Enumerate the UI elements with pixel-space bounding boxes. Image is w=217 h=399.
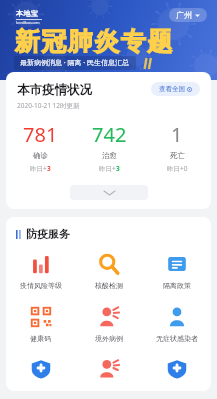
button[interactable]: 隔离政策	[143, 251, 211, 292]
staticText: 3	[116, 164, 120, 173]
staticText: 隔离政策	[163, 281, 191, 290]
staticText: 无症状感染者	[156, 334, 198, 343]
staticText: 本地宝	[16, 9, 39, 18]
button[interactable]: 健康码	[6, 304, 75, 345]
button[interactable]: 查看全国	[151, 82, 200, 96]
button[interactable]: 核酸检测	[75, 251, 143, 292]
button[interactable]: 展开更多	[70, 185, 148, 200]
staticText: 健康码	[30, 334, 51, 343]
button[interactable]: 新冠疫苗	[6, 357, 75, 381]
button[interactable]: 无症状感染者	[143, 304, 211, 345]
staticText: 死亡	[170, 151, 185, 160]
staticText: 境外病例	[95, 334, 123, 343]
staticText: 1	[171, 121, 183, 148]
button[interactable]: 742	[75, 121, 143, 173]
staticText: 确诊	[33, 151, 48, 160]
staticText: 广州	[176, 10, 192, 20]
button[interactable]: 广州	[169, 8, 207, 22]
button[interactable]: 781	[6, 121, 75, 173]
staticText: 新冠肺炎专题	[14, 26, 173, 57]
staticText: 昨日+0	[167, 164, 188, 173]
staticText: 昨日+	[30, 164, 47, 173]
staticText: 742	[92, 121, 127, 148]
staticText: 最新病例消息 · 隔离 · 民生信息汇总	[20, 58, 130, 68]
staticText: 防疫服务	[26, 227, 70, 241]
staticText: 疫情风险等级	[20, 281, 62, 290]
button[interactable]: 流感疫苗	[75, 357, 143, 381]
staticText: 本市疫情状况	[17, 82, 92, 98]
button[interactable]: 境外病例	[75, 304, 143, 345]
staticText: 昨日+	[99, 164, 116, 173]
staticText: 2020-10-21 12时更新	[17, 101, 80, 110]
staticText: 治愈	[102, 151, 117, 160]
button[interactable]: 疫情风险等级	[6, 251, 75, 292]
staticText: bendibao.com	[16, 20, 40, 25]
button[interactable]: 1	[143, 121, 211, 173]
staticText: 3	[47, 164, 51, 173]
staticText: 781	[23, 121, 58, 148]
staticText: 查看全国	[159, 85, 185, 93]
button[interactable]: 九价疫苗	[143, 357, 211, 381]
staticText: 核酸检测	[95, 281, 123, 290]
